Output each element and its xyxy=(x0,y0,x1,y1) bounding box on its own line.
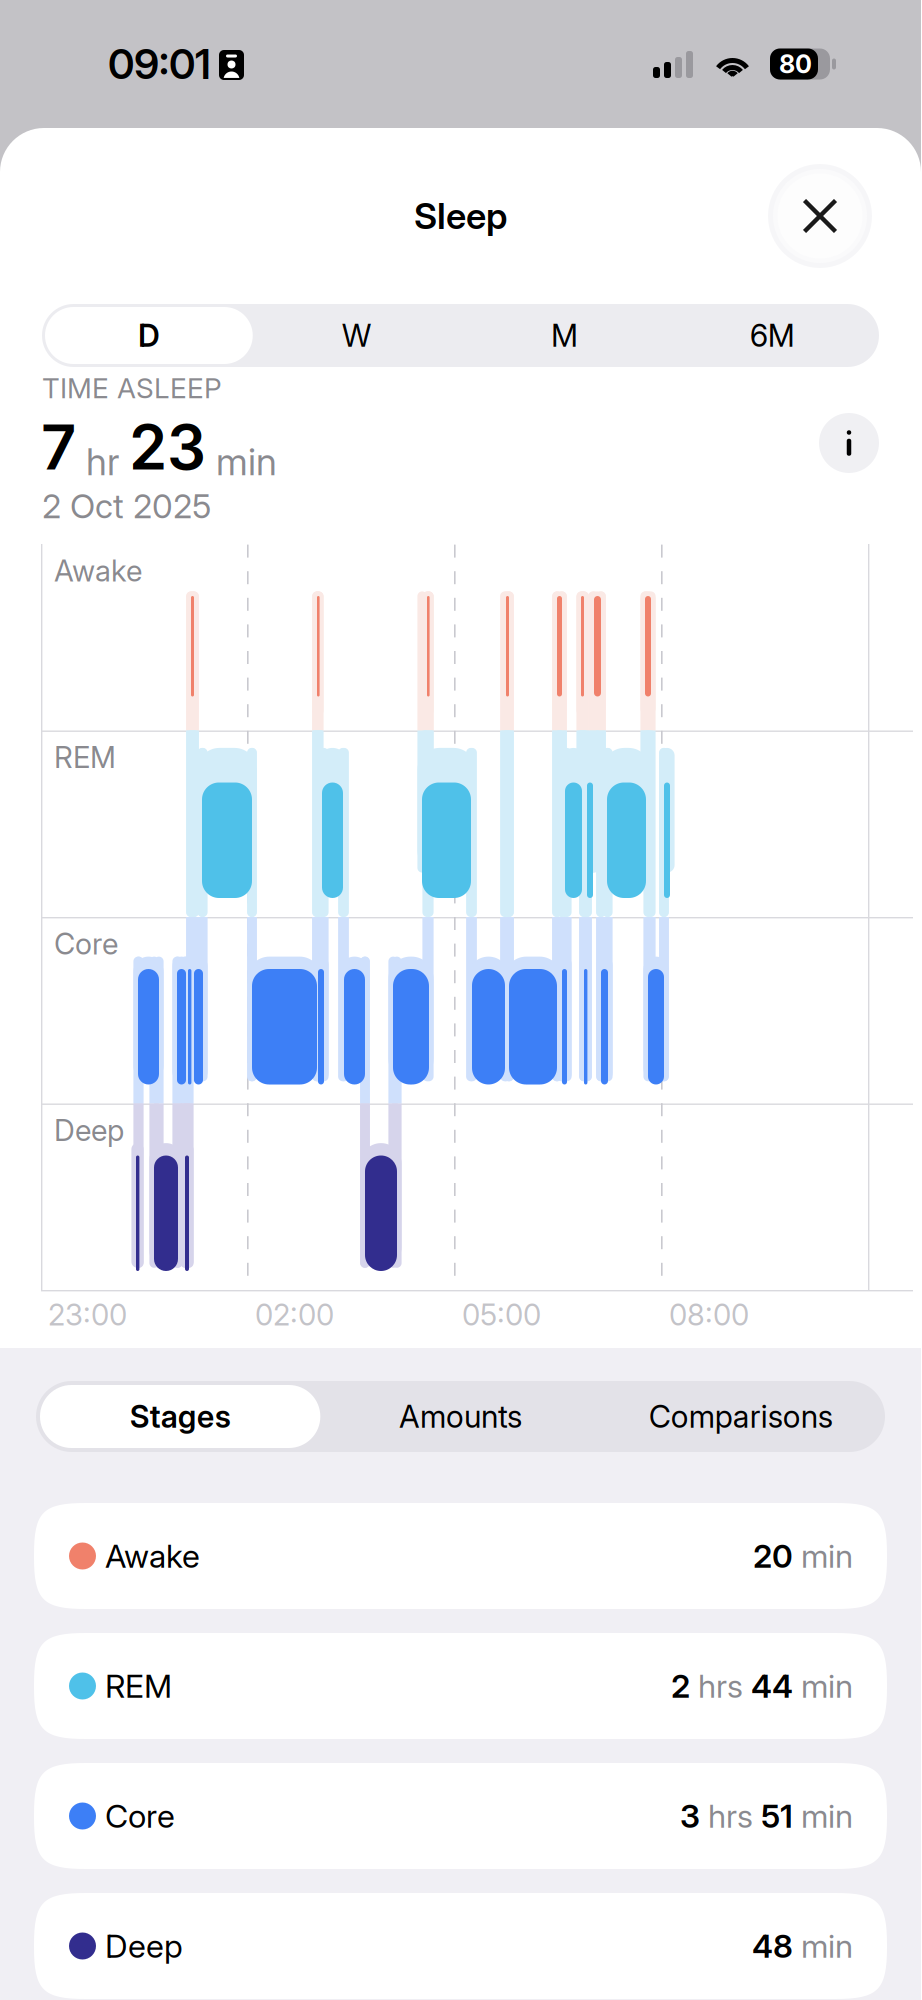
staticText: Deep xyxy=(105,1927,183,1965)
staticText: hrs xyxy=(690,1667,743,1705)
staticText: 3 xyxy=(680,1797,700,1835)
button[interactable]: Comparisons xyxy=(601,1385,881,1448)
staticText: Awake xyxy=(54,553,142,588)
button[interactable]: 6M xyxy=(668,307,876,364)
staticText: D xyxy=(138,317,160,354)
staticText: hr xyxy=(76,439,129,484)
button[interactable]: REM xyxy=(34,1633,887,1739)
button[interactable]: D xyxy=(45,307,253,364)
staticText: 08:00 xyxy=(669,1297,749,1332)
staticText: 05:00 xyxy=(462,1297,541,1332)
staticText: Amounts xyxy=(399,1398,522,1435)
button[interactable]: Stages xyxy=(40,1385,320,1448)
button[interactable]: W xyxy=(253,307,461,364)
staticText: W xyxy=(342,317,372,354)
staticText: REM xyxy=(54,739,116,775)
staticText: Core xyxy=(105,1797,175,1835)
staticText: 20 xyxy=(753,1537,793,1575)
staticText: hrs xyxy=(700,1797,753,1835)
staticText: Core xyxy=(54,926,118,961)
staticText: 80 xyxy=(779,49,812,79)
button[interactable]: Awake xyxy=(34,1503,887,1609)
button[interactable]: M xyxy=(460,307,668,364)
staticText: M xyxy=(551,317,578,354)
button[interactable]: Amounts xyxy=(320,1385,601,1448)
staticText: min xyxy=(206,439,277,484)
staticText: 44 xyxy=(743,1667,793,1705)
button[interactable]: Close xyxy=(765,161,875,271)
staticText: min xyxy=(793,1537,853,1575)
staticText: TIME ASLEEP xyxy=(42,371,222,405)
staticText: Sleep xyxy=(414,194,507,238)
staticText: min xyxy=(793,1927,853,1965)
staticText: 09:01 xyxy=(108,39,211,89)
staticText: 51 xyxy=(753,1797,793,1835)
button[interactable]: Deep xyxy=(34,1893,887,1999)
staticText: 48 xyxy=(752,1927,793,1965)
staticText: 23 xyxy=(129,410,206,484)
staticText: Deep xyxy=(54,1112,124,1148)
staticText: 7 xyxy=(41,410,76,484)
staticText: min xyxy=(793,1667,853,1705)
staticText: REM xyxy=(105,1667,172,1705)
staticText: Comparisons xyxy=(649,1398,833,1435)
staticText: min xyxy=(793,1797,853,1835)
staticText: 2 Oct 2025 xyxy=(42,486,211,526)
staticText: 23:00 xyxy=(48,1297,127,1332)
staticText: 02:00 xyxy=(255,1297,334,1332)
staticText: 2 xyxy=(671,1667,690,1705)
button[interactable]: Core xyxy=(34,1763,887,1869)
button[interactable]: Info xyxy=(819,413,879,473)
staticText: 6M xyxy=(750,317,795,354)
staticText: Stages xyxy=(130,1398,231,1435)
staticText: Awake xyxy=(105,1537,200,1575)
